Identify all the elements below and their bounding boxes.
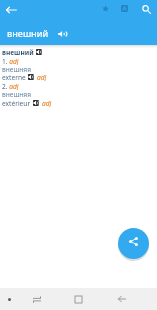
staticText: внешний xyxy=(2,48,34,56)
staticText: внешняя xyxy=(2,65,31,73)
button[interactable]: Pronounce xyxy=(28,74,34,80)
staticText: externe xyxy=(2,73,26,81)
button[interactable]: More xyxy=(2,288,17,310)
button[interactable]: Back xyxy=(113,288,130,310)
staticText: adj xyxy=(37,73,47,81)
staticText: adj xyxy=(42,99,52,107)
button[interactable]: Back xyxy=(0,0,23,19)
button[interactable]: Share xyxy=(118,228,149,259)
button[interactable]: Search xyxy=(135,0,157,18)
staticText: внешний xyxy=(7,27,49,40)
button[interactable]: Pronounce xyxy=(33,100,39,106)
button[interactable]: Add to favourites xyxy=(95,0,116,17)
button[interactable]: Pronounce xyxy=(36,49,42,55)
staticText: extérieur xyxy=(2,99,31,107)
staticText: 2. adj xyxy=(2,82,19,90)
button[interactable]: Switch input method xyxy=(29,288,44,310)
staticText: внешняя xyxy=(2,90,31,98)
button[interactable]: Home xyxy=(70,288,87,310)
button[interactable]: Pronounce xyxy=(57,28,68,39)
staticText: 1. adj xyxy=(2,57,19,65)
button[interactable]: Text size xyxy=(114,0,135,17)
